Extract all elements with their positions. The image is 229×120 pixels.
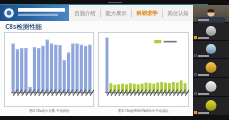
button[interactable]: 岗位认知 bbox=[163, 5, 193, 21]
button[interactable]: 参会者 4 bbox=[193, 59, 229, 77]
staticText: 岗位认知 bbox=[167, 10, 189, 17]
button[interactable]: 参会者 3 bbox=[193, 41, 229, 58]
staticText: 图5 C8s检测的VN的指示子组成点 bbox=[118, 108, 169, 113]
staticText: 能力展示 bbox=[105, 10, 127, 17]
staticText: 科研求学 bbox=[136, 10, 158, 17]
button[interactable]: 参会者 1 bbox=[193, 5, 229, 22]
staticText: 图4 C8s成分含量-子组排性 bbox=[29, 108, 70, 113]
button[interactable]: 机构标识 bbox=[0, 5, 69, 21]
button[interactable]: 图5 C8s检测的VN的指示子组成点 bbox=[98, 32, 189, 107]
button[interactable]: 能力展示 bbox=[101, 5, 131, 21]
button[interactable]: 参会者 5 bbox=[193, 78, 229, 96]
button[interactable]: 自我介绍 bbox=[69, 5, 100, 21]
staticText: C8s检测性能 bbox=[5, 22, 42, 31]
button[interactable]: 参会者 6 bbox=[193, 97, 229, 115]
staticText: 自我介绍 bbox=[74, 10, 96, 17]
button[interactable]: 参会者 2 bbox=[193, 23, 229, 40]
button[interactable]: 图4 C8s成分含量-子组排性 bbox=[4, 32, 94, 107]
button[interactable]: 科研求学 bbox=[132, 5, 162, 21]
